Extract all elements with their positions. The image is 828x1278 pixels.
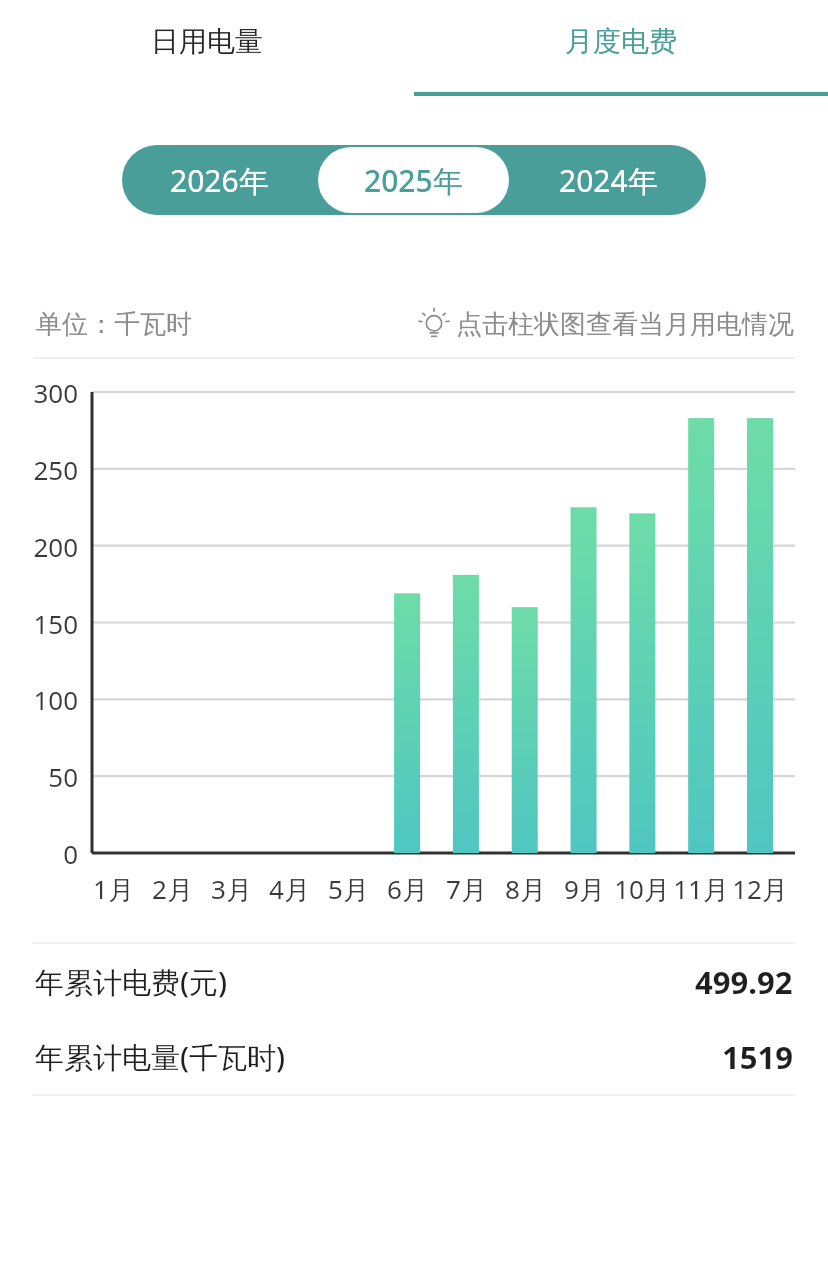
staticText: 50	[48, 759, 78, 794]
button[interactable]: 年累计电量(千瓦时)	[0, 1019, 828, 1094]
button[interactable]: 2月	[132, 871, 212, 907]
staticText: 100	[33, 682, 78, 717]
other: 提示：点击柱状图查看当月用电情况	[417, 307, 451, 341]
staticText: 1519	[722, 1036, 793, 1078]
button[interactable]: 2024年	[513, 147, 704, 213]
button[interactable]: 3月	[191, 871, 271, 907]
staticText: 点击柱状图查看当月用电情况	[456, 308, 794, 341]
staticText: 年累计电费(元)	[35, 962, 228, 1002]
staticText: 3月	[211, 871, 252, 907]
staticText: 499.92	[695, 961, 793, 1003]
button[interactable]: 10月	[602, 871, 682, 907]
staticText: 月度电费	[565, 24, 677, 59]
button[interactable]: 7月	[426, 871, 506, 907]
staticText: 12月	[732, 871, 788, 907]
staticText: 7月	[446, 871, 487, 907]
staticText: 2026年	[170, 160, 269, 201]
button[interactable]: 12月	[720, 871, 800, 907]
staticText: 4月	[269, 871, 310, 907]
staticText: 300	[33, 375, 78, 410]
button[interactable]: 6月	[367, 871, 447, 907]
button[interactable]: 日用电量	[0, 0, 414, 96]
button[interactable]: 年累计电费(元)	[0, 944, 828, 1019]
button[interactable]: 提示：点击柱状图查看当月用电情况	[417, 307, 794, 341]
button[interactable]: 8月	[485, 871, 565, 907]
button[interactable]: 5月	[308, 871, 388, 907]
button[interactable]: 11月	[661, 871, 741, 907]
button[interactable]: 9月	[544, 871, 624, 907]
staticText: 8月	[505, 871, 546, 907]
staticText: 2025年	[364, 160, 463, 201]
staticText: 250	[33, 452, 78, 487]
staticText: 1月	[93, 871, 134, 907]
staticText: 5月	[328, 871, 369, 907]
button[interactable]: 月度电费	[414, 0, 828, 96]
staticText: 6月	[387, 871, 428, 907]
staticText: 2月	[152, 871, 193, 907]
staticText: 150	[33, 606, 78, 641]
staticText: 日用电量	[151, 24, 263, 59]
button[interactable]: 2025年	[318, 147, 509, 213]
staticText: 10月	[614, 871, 670, 907]
staticText: 200	[33, 529, 78, 564]
staticText: 年累计电量(千瓦时)	[35, 1037, 286, 1077]
button[interactable]: 2026年	[124, 147, 314, 213]
staticText: 单位：千瓦时	[36, 308, 192, 341]
staticText: 2024年	[559, 160, 658, 201]
staticText: 11月	[673, 871, 729, 907]
button[interactable]: 1月	[73, 871, 153, 907]
button[interactable]: 4月	[249, 871, 329, 907]
staticText: 9月	[564, 871, 605, 907]
staticText: 0	[63, 836, 78, 871]
